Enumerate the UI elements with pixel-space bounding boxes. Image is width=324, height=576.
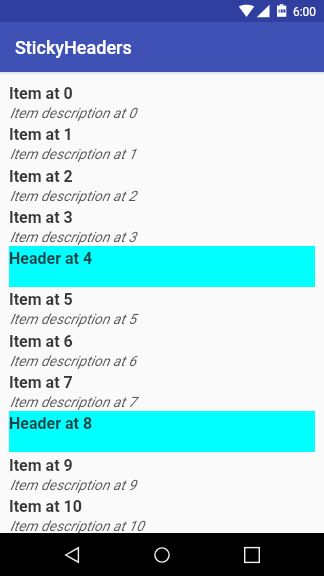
- button[interactable]: Item at 10: [9, 494, 315, 535]
- button[interactable]: Item at 9: [9, 453, 315, 494]
- staticText: Header at 4: [9, 249, 93, 268]
- staticText: Item description at 9: [10, 477, 137, 494]
- staticText: Item at 7: [9, 373, 73, 392]
- staticText: Item description at 6: [10, 353, 137, 370]
- button[interactable]: Header at 8: [9, 411, 315, 452]
- button[interactable]: Item at 0: [9, 81, 315, 122]
- button[interactable]: Item at 2: [9, 164, 315, 205]
- staticText: Item at 5: [9, 290, 73, 309]
- staticText: Item at 10: [9, 497, 82, 516]
- button[interactable]: Item at 5: [9, 287, 315, 328]
- staticText: Item at 2: [9, 167, 73, 186]
- button[interactable]: Back: [48, 533, 96, 576]
- staticText: Item description at 0: [10, 105, 137, 122]
- staticText: Item description at 2: [10, 188, 137, 205]
- button[interactable]: Recents: [228, 533, 276, 576]
- staticText: Item at 1: [9, 125, 73, 144]
- staticText: Item description at 1: [10, 146, 137, 163]
- button[interactable]: Item at 1: [9, 122, 315, 163]
- staticText: Item description at 7: [10, 394, 137, 411]
- button[interactable]: Item at 7: [9, 370, 315, 411]
- staticText: 6:00: [293, 5, 316, 19]
- button[interactable]: Item at 6: [9, 329, 315, 370]
- staticText: Item description at 5: [10, 311, 137, 328]
- button[interactable]: StickyHeaders: [0, 22, 324, 72]
- staticText: Item at 0: [9, 84, 73, 103]
- staticText: Item description at 10: [10, 518, 144, 535]
- staticText: Item at 6: [9, 332, 73, 351]
- staticText: Item description at 3: [10, 229, 137, 246]
- button[interactable]: Header at 4: [9, 246, 315, 287]
- button[interactable]: Item at 3: [9, 205, 315, 246]
- staticText: Item at 3: [9, 208, 73, 227]
- button[interactable]: Home: [138, 533, 186, 576]
- staticText: Item at 9: [9, 456, 73, 475]
- staticText: Header at 8: [9, 414, 93, 433]
- staticText: StickyHeaders: [15, 37, 132, 58]
